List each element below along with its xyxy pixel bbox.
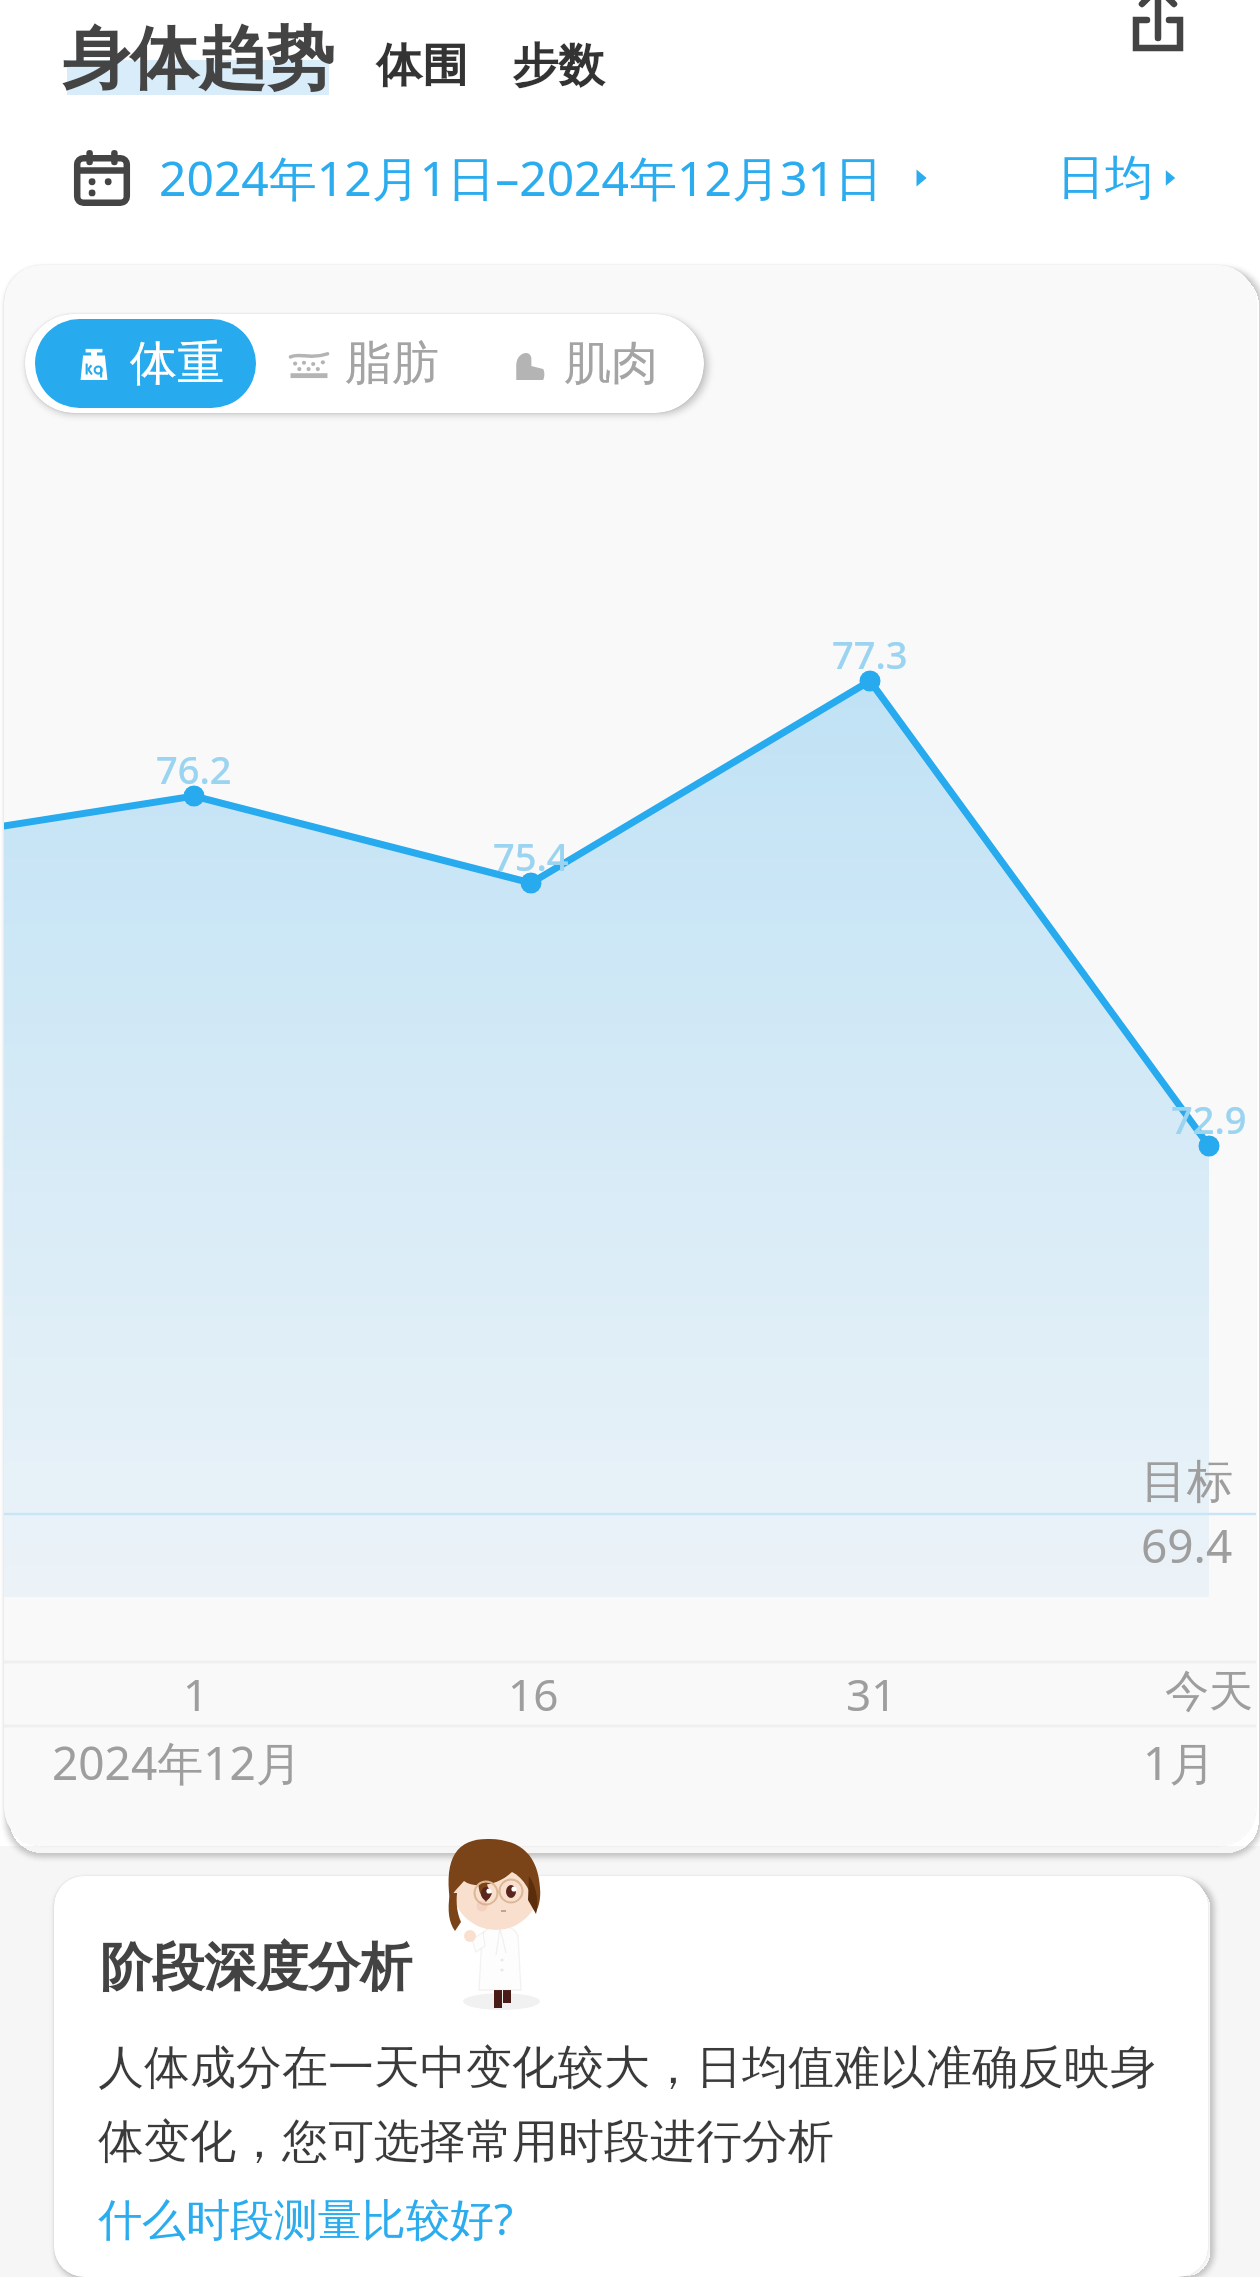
staticText: 2024年12月 bbox=[52, 1731, 302, 1794]
staticText: 72.9 bbox=[1171, 1093, 1247, 1145]
button[interactable]: 脂肪 bbox=[256, 319, 475, 408]
button[interactable]: 日均 bbox=[1057, 148, 1183, 208]
staticText: 日均 bbox=[1057, 148, 1153, 208]
button[interactable]: 体围 bbox=[372, 37, 472, 103]
staticText: 阶段深度分析 bbox=[100, 1935, 412, 2001]
staticText: 目标 bbox=[1141, 1453, 1233, 1511]
staticText: 77.3 bbox=[832, 628, 908, 680]
button[interactable]: 肌肉 bbox=[475, 319, 694, 408]
button[interactable]: 阶段深度分析 bbox=[54, 1876, 1208, 2277]
button[interactable]: 身体趋势 bbox=[62, 17, 334, 103]
staticText: 肌肉 bbox=[564, 334, 658, 393]
button[interactable]: 2024年12月1日–2024年12月31日 bbox=[71, 145, 935, 211]
staticText: 76.2 bbox=[156, 743, 232, 795]
button[interactable]: 体重 bbox=[35, 319, 256, 408]
button[interactable]: Share bbox=[1108, 0, 1208, 70]
staticText: 今天 bbox=[1165, 1664, 1253, 1719]
staticText: 1月 bbox=[1143, 1731, 1216, 1794]
staticText: 体重 bbox=[130, 334, 224, 393]
staticText: 16 bbox=[508, 1664, 559, 1724]
staticText: 75.4 bbox=[493, 830, 569, 882]
staticText: 69.4 bbox=[1141, 1514, 1233, 1577]
button[interactable]: 什么时段测量比较好? bbox=[98, 2188, 514, 2248]
staticText: 31 bbox=[846, 1664, 897, 1724]
button[interactable]: 步数 bbox=[508, 37, 608, 103]
staticText: 身体趋势 bbox=[62, 17, 334, 103]
staticText: 脂肪 bbox=[345, 334, 439, 393]
staticText: 人体成分在一天中变化较大，日均值难以准确反映身体变化，您可选择常用时段进行分析 bbox=[98, 2039, 1188, 2171]
staticText: 1 bbox=[183, 1664, 209, 1724]
staticText: 2024年12月1日–2024年12月31日 bbox=[159, 145, 883, 211]
